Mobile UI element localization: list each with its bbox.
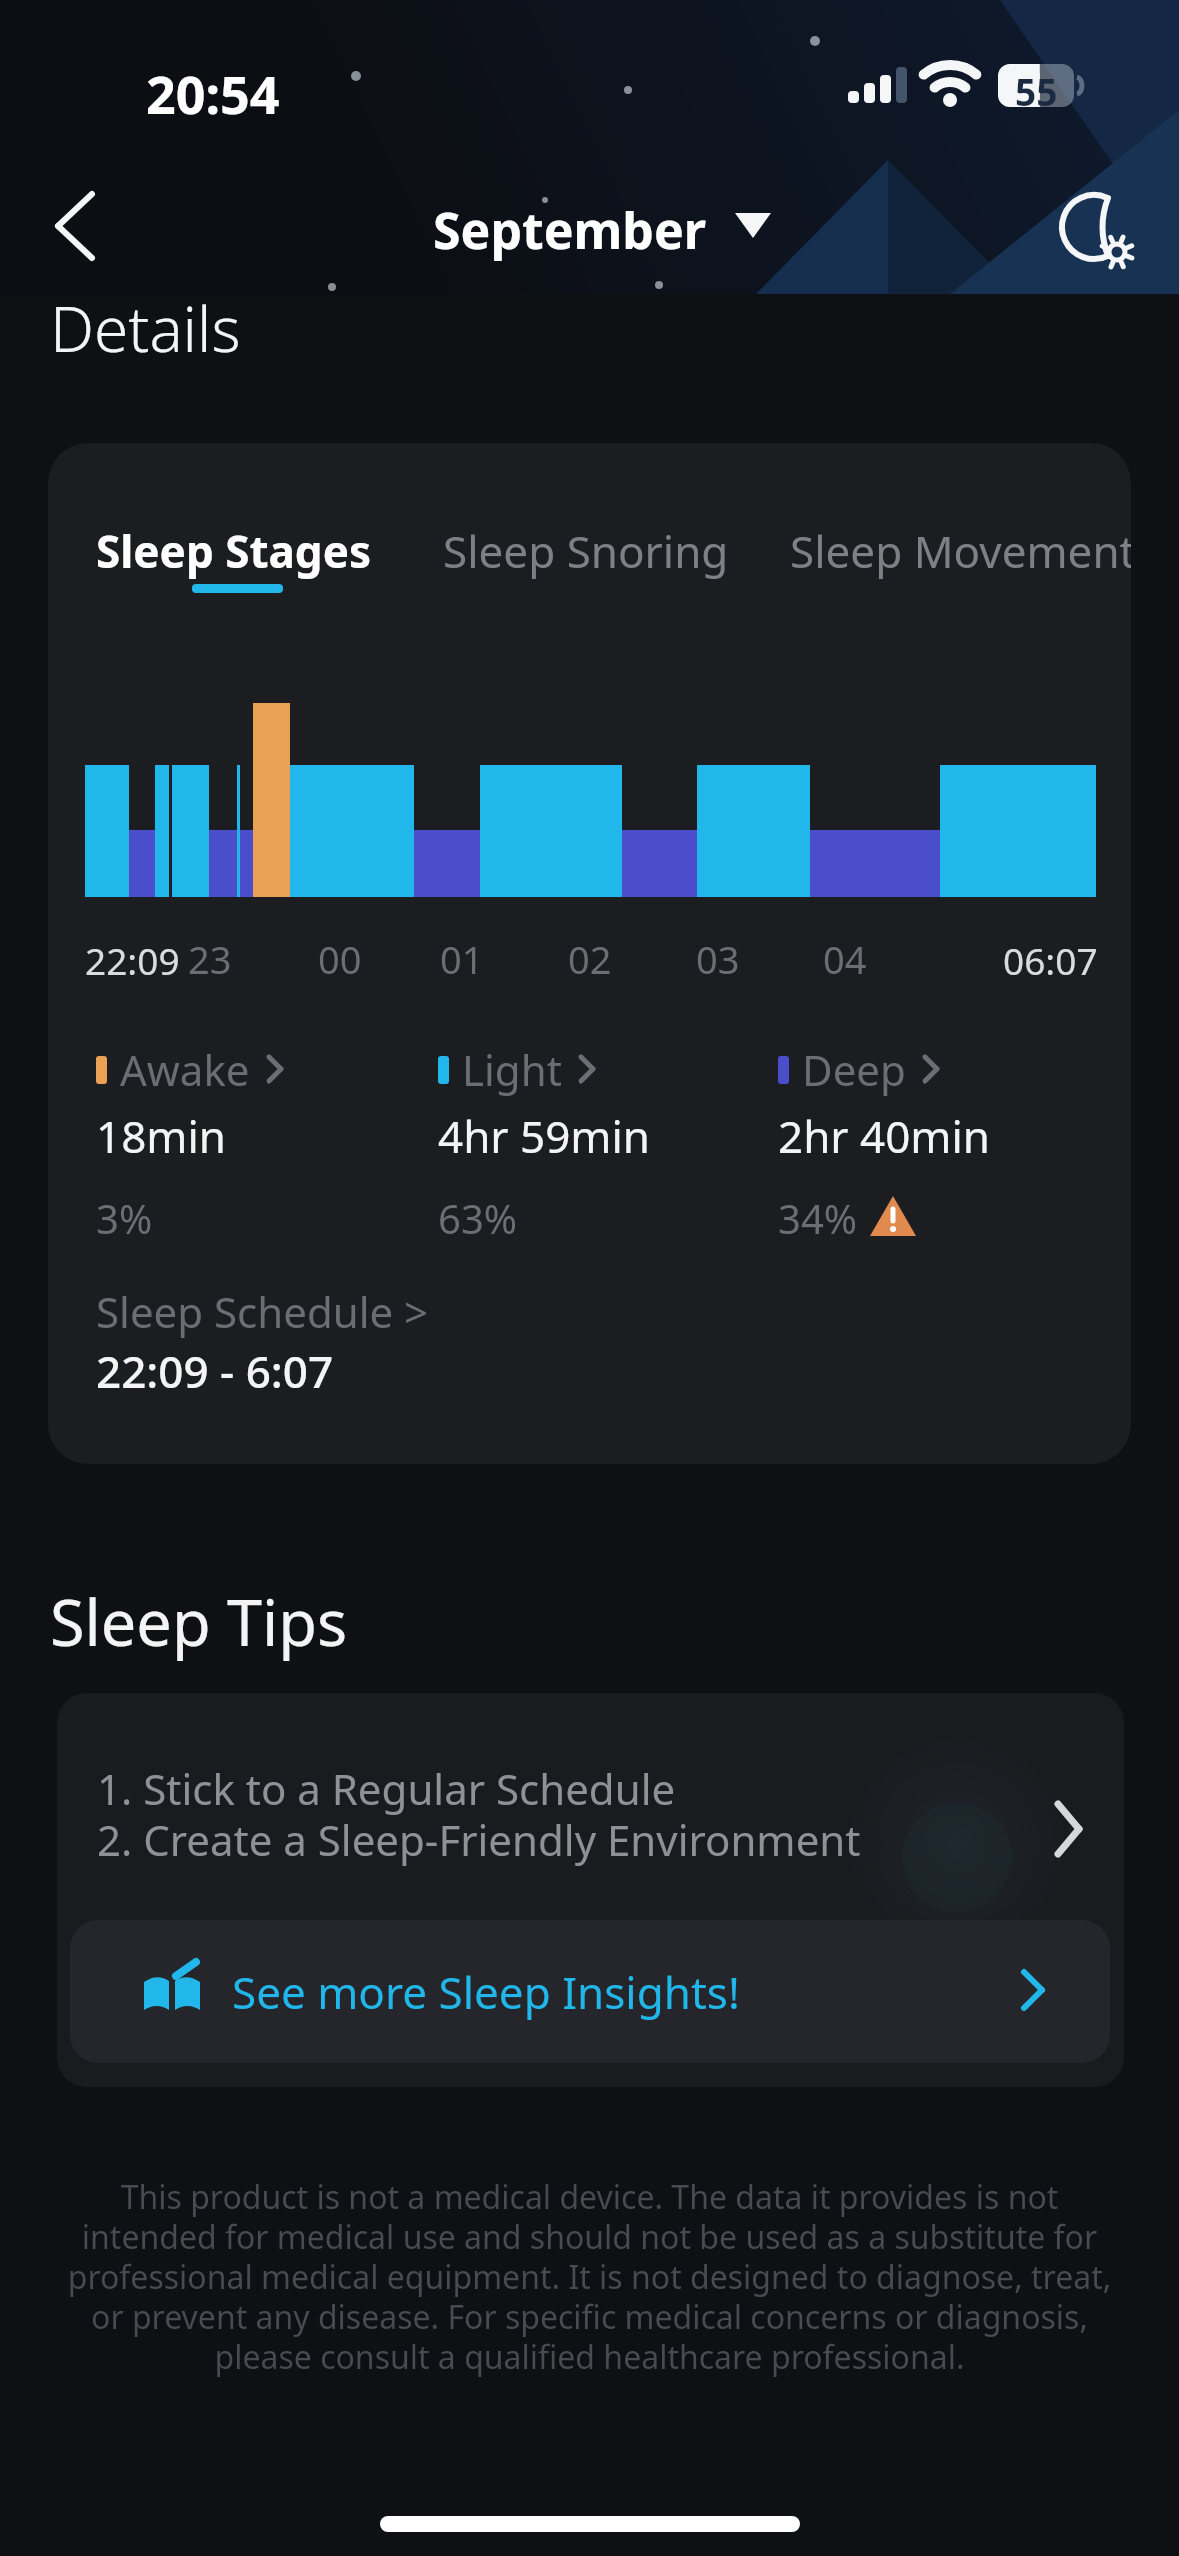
button[interactable]: See more Sleep Insights!: [70, 1920, 1110, 2063]
staticText: 18min: [96, 1106, 227, 1166]
button[interactable]: [40, 186, 116, 266]
staticText: Sleep Snoring: [443, 521, 729, 581]
button[interactable]: Sleep Snoring: [443, 521, 729, 581]
staticText: 02: [568, 933, 612, 985]
staticText: September: [433, 196, 707, 264]
staticText: Deep: [802, 1041, 906, 1098]
button[interactable]: Light: [438, 1041, 595, 1098]
staticText: 34%: [778, 1191, 857, 1245]
staticText: Light: [462, 1041, 562, 1098]
staticText: Sleep Tips: [50, 1579, 348, 1665]
staticText: 4hr 59min: [438, 1106, 650, 1166]
staticText: Details: [50, 286, 241, 370]
button[interactable]: 1. Stick to a Regular Schedule: [57, 1693, 1124, 2087]
button[interactable]: Sleep Movement: [790, 521, 1131, 581]
staticText: 03: [696, 933, 740, 985]
staticText: 1. Stick to a Regular Schedule: [97, 1760, 676, 1817]
button[interactable]: Deep: [778, 1041, 939, 1098]
button[interactable]: Awake: [96, 1041, 283, 1098]
staticText: 04: [823, 933, 867, 985]
staticText: 3%: [96, 1191, 153, 1245]
staticText: Sleep Stages: [96, 521, 371, 581]
button[interactable]: Sleep Schedule >: [96, 1283, 429, 1340]
staticText: Awake: [120, 1041, 250, 1098]
staticText: 2hr 40min: [778, 1106, 990, 1166]
staticText: 55: [1015, 66, 1058, 116]
staticText: 00: [318, 933, 362, 985]
staticText: 06:07: [1003, 935, 1098, 985]
staticText: See more Sleep Insights!: [232, 1962, 740, 2022]
staticText: 22:09: [85, 935, 180, 985]
staticText: 63%: [438, 1191, 517, 1245]
staticText: Sleep Movement: [790, 521, 1131, 581]
staticText: 22:09 - 6:07: [96, 1341, 334, 1401]
button[interactable]: September: [433, 196, 707, 264]
staticText: 2. Create a Sleep-Friendly Environment: [97, 1811, 861, 1868]
staticText: 01: [440, 933, 484, 985]
button[interactable]: [1050, 186, 1150, 276]
staticText: 20:54: [146, 58, 280, 129]
button[interactable]: Sleep Stages: [96, 521, 371, 581]
staticText: Sleep Schedule >: [96, 1283, 429, 1340]
staticText: 23: [188, 933, 232, 985]
staticText: This product is not a medical device. Th…: [0, 2175, 1179, 2379]
